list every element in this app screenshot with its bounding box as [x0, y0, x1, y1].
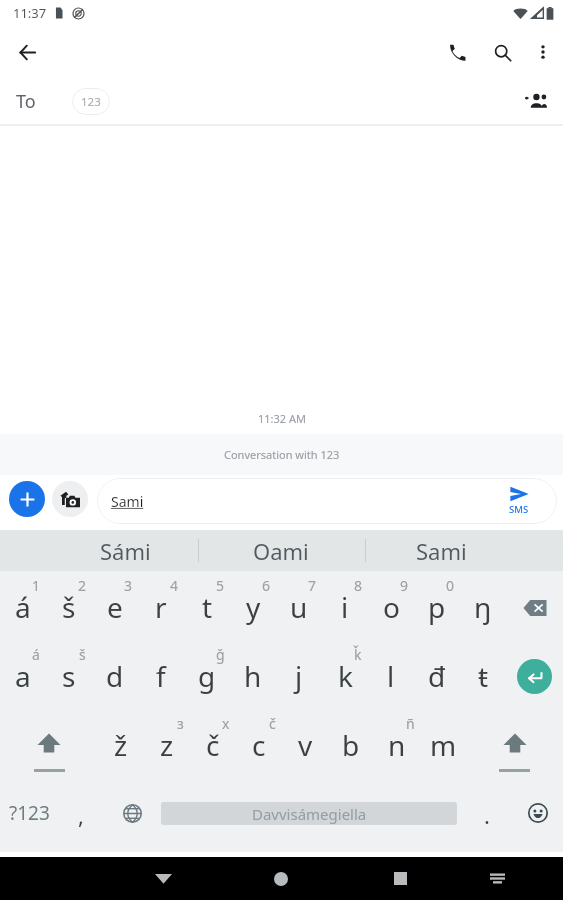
button[interactable]: Sami [97, 478, 557, 524]
button[interactable]: b [328, 709, 374, 779]
staticText: f [156, 657, 166, 695]
button[interactable]: ŋ [460, 571, 506, 640]
staticText: 2 [78, 576, 87, 595]
button[interactable]: Davvisámegiella [161, 802, 457, 825]
staticText: ?123 [9, 800, 50, 826]
staticText: 4 [170, 576, 179, 595]
button[interactable]: ŧ [460, 640, 506, 709]
staticText: m [430, 726, 457, 764]
button[interactable]: Enter [506, 640, 563, 709]
button[interactable]: Keyboard [475, 857, 519, 900]
staticText: 6 [262, 576, 271, 595]
staticText: e [107, 588, 123, 626]
button[interactable]: á [0, 571, 46, 640]
button[interactable]: Back [5, 30, 49, 74]
staticText: s [62, 657, 76, 695]
button[interactable]: a [0, 640, 46, 709]
staticText: p [428, 588, 446, 626]
button[interactable]: , [58, 795, 104, 834]
staticText: v [298, 726, 313, 764]
staticText: , [78, 800, 84, 830]
staticText: č [206, 726, 220, 764]
button[interactable]: Add attachment [9, 481, 45, 517]
button[interactable]: Recents [378, 857, 422, 900]
button[interactable]: č [190, 709, 236, 779]
staticText: g [198, 657, 216, 695]
button[interactable]: y [230, 571, 276, 640]
button[interactable]: Back [141, 857, 185, 900]
staticText: Sami [416, 536, 467, 566]
button[interactable]: ?123 [0, 785, 58, 840]
button[interactable]: đ [414, 640, 460, 709]
staticText: 0 [446, 576, 455, 595]
staticText: á [15, 588, 31, 626]
button[interactable]: s [46, 640, 92, 709]
staticText: č [269, 714, 276, 733]
staticText: 123 [81, 94, 101, 110]
button[interactable]: Send SMS [509, 486, 529, 516]
staticText: 7 [308, 576, 317, 595]
staticText: Sámi [100, 536, 151, 566]
staticText: š [62, 588, 76, 626]
button[interactable]: Shift [0, 709, 98, 779]
staticText: z [160, 726, 174, 764]
staticText: x [222, 714, 230, 733]
button[interactable]: u [276, 571, 322, 640]
staticText: ñ [406, 714, 415, 733]
staticText: ŧ [478, 657, 489, 695]
button[interactable]: c [236, 709, 282, 779]
button[interactable]: Add people [519, 84, 553, 118]
button[interactable]: g [184, 640, 230, 709]
button[interactable]: Emoji [515, 785, 561, 840]
button[interactable]: š [46, 571, 92, 640]
staticText: t [202, 588, 213, 626]
staticText: Conversation with 123 [224, 447, 340, 462]
button[interactable]: j [276, 640, 322, 709]
button[interactable]: v [282, 709, 328, 779]
button[interactable]: o [368, 571, 414, 640]
staticText: з [177, 714, 184, 733]
button[interactable]: ž [98, 709, 144, 779]
button[interactable]: Oami [182, 530, 380, 571]
staticText: Sami [111, 492, 144, 511]
button[interactable]: Home [259, 857, 303, 900]
staticText: a [15, 657, 31, 695]
button[interactable]: Call [435, 30, 480, 75]
button[interactable]: Camera [52, 481, 88, 517]
button[interactable]: t [184, 571, 230, 640]
button[interactable]: n [374, 709, 420, 779]
staticText: h [244, 657, 262, 695]
staticText: To [16, 89, 36, 114]
button[interactable]: f [138, 640, 184, 709]
staticText: ŋ [474, 588, 492, 626]
button[interactable]: Backspace [506, 571, 563, 640]
staticText: 1 [32, 576, 41, 595]
button[interactable]: i [322, 571, 368, 640]
staticText: i [341, 588, 349, 626]
button[interactable]: e [92, 571, 138, 640]
button[interactable]: Change language [109, 786, 155, 840]
staticText: 3 [124, 576, 133, 595]
button[interactable]: l [368, 640, 414, 709]
button[interactable]: 123 [72, 88, 110, 115]
button[interactable]: Sámi [26, 530, 224, 571]
button[interactable]: k [322, 640, 368, 709]
button[interactable]: Sami [342, 530, 540, 571]
staticText: . [484, 800, 490, 830]
button[interactable]: m [420, 709, 466, 779]
staticText: đ [428, 657, 446, 695]
button[interactable]: r [138, 571, 184, 640]
button[interactable]: More options [523, 32, 563, 72]
button[interactable]: Search [480, 30, 525, 75]
button[interactable]: d [92, 640, 138, 709]
button[interactable]: Shift [466, 709, 563, 779]
button[interactable]: . [464, 795, 510, 834]
staticText: ǩ [354, 645, 362, 664]
button[interactable]: p [414, 571, 460, 640]
staticText: Oami [253, 536, 309, 566]
staticText: ǧ [216, 645, 225, 664]
button[interactable]: z [144, 709, 190, 779]
staticText: j [295, 657, 303, 695]
staticText: š [79, 645, 86, 664]
button[interactable]: h [230, 640, 276, 709]
